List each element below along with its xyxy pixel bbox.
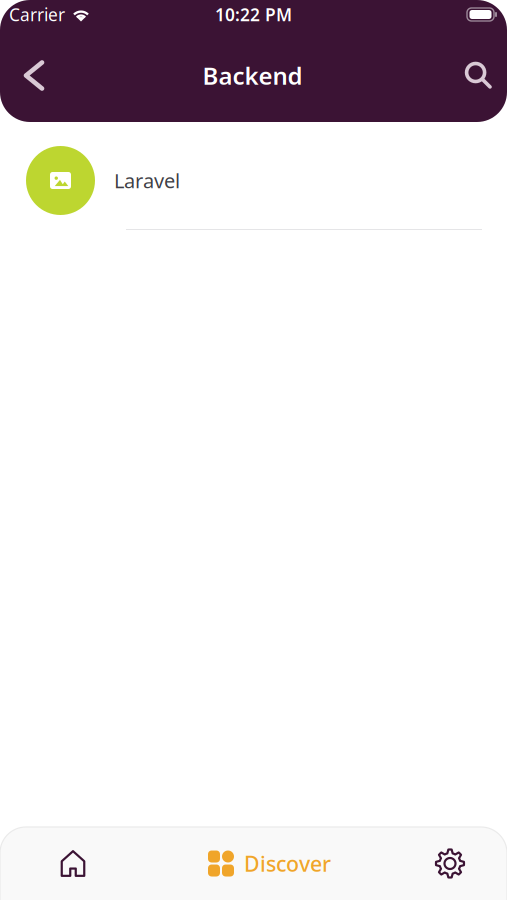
button[interactable]: Discover: [146, 827, 377, 900]
button[interactable]: Home: [0, 827, 146, 900]
button[interactable]: Back: [0, 35, 60, 115]
staticText: 10:22 PM: [215, 3, 292, 26]
staticText: Backend: [202, 60, 302, 91]
button[interactable]: Laravel: [0, 146, 507, 230]
button[interactable]: Settings: [377, 827, 507, 900]
staticText: Discover: [244, 849, 331, 878]
button[interactable]: Search: [445, 35, 507, 115]
staticText: Carrier: [9, 3, 65, 26]
staticText: Laravel: [114, 167, 180, 194]
